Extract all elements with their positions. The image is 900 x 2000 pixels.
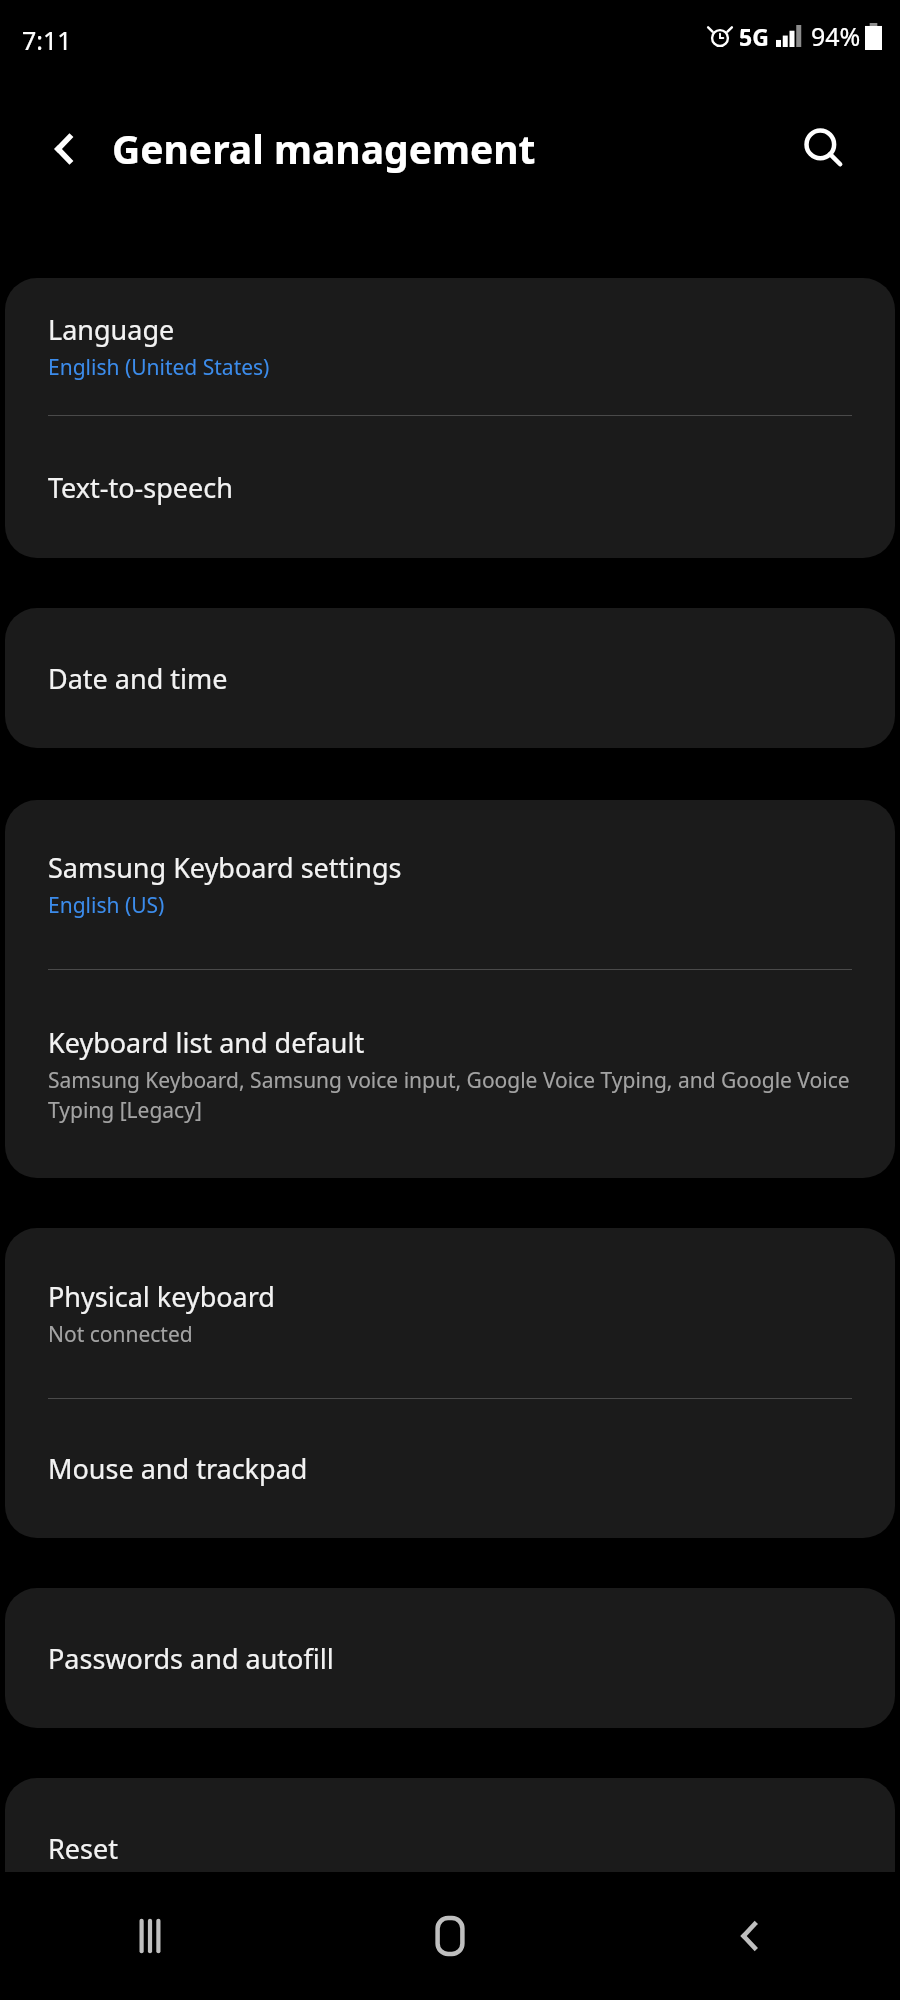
button[interactable]: Recent apps bbox=[0, 1886, 300, 1986]
button[interactable]: Mouse and trackpad bbox=[5, 1399, 895, 1538]
button[interactable]: Reset bbox=[5, 1778, 895, 1918]
button[interactable]: Home bbox=[300, 1886, 600, 1986]
staticText: Language bbox=[48, 311, 175, 348]
button[interactable]: Keyboard list and default bbox=[5, 970, 895, 1178]
staticText: 7:11 bbox=[22, 23, 72, 57]
staticText: English (US) bbox=[48, 891, 165, 920]
staticText: Keyboard list and default bbox=[48, 1024, 365, 1061]
staticText: 94% bbox=[811, 19, 861, 53]
staticText: Reset bbox=[48, 1830, 118, 1867]
button[interactable]: Back bbox=[600, 1886, 900, 1986]
staticText: Samsung Keyboard, Samsung voice input, G… bbox=[48, 1066, 859, 1124]
staticText: Physical keyboard bbox=[48, 1278, 275, 1315]
button[interactable]: Passwords and autofill bbox=[5, 1588, 895, 1728]
button[interactable]: Back bbox=[28, 111, 104, 187]
staticText: Text-to-speech bbox=[48, 469, 233, 506]
staticText: Not connected bbox=[48, 1320, 193, 1349]
staticText: General management bbox=[112, 122, 536, 175]
button[interactable]: Samsung Keyboard settings bbox=[5, 800, 895, 969]
staticText: Passwords and autofill bbox=[48, 1640, 334, 1677]
staticText: Date and time bbox=[48, 660, 228, 697]
button[interactable]: Text-to-speech bbox=[5, 416, 895, 558]
staticText: English (United States) bbox=[48, 353, 270, 382]
staticText: Samsung Keyboard settings bbox=[48, 849, 402, 886]
button[interactable]: Language bbox=[5, 278, 895, 415]
staticText: 5G bbox=[739, 21, 769, 52]
button[interactable]: Date and time bbox=[5, 608, 895, 748]
button[interactable]: Search bbox=[786, 111, 862, 187]
button[interactable]: Physical keyboard bbox=[5, 1228, 895, 1398]
staticText: Mouse and trackpad bbox=[48, 1450, 308, 1487]
